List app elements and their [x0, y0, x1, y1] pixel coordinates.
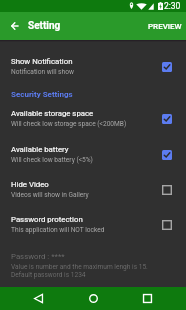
staticText: Available storage space	[11, 109, 94, 118]
staticText: Default password is 1234	[11, 271, 86, 279]
button[interactable]: Recent apps	[136, 287, 158, 310]
staticText: Security Settings	[11, 90, 73, 99]
staticText: Notification will show	[11, 68, 74, 76]
button[interactable]: Home	[82, 287, 104, 310]
staticText: Password : ****	[11, 252, 65, 261]
button[interactable]: Back	[27, 287, 49, 310]
staticText: 2:30	[164, 1, 181, 11]
button[interactable]: Available battery	[0, 142, 186, 164]
button[interactable]: Hide Video	[0, 177, 186, 199]
staticText: Hide Video	[11, 180, 49, 189]
staticText: Available battery	[11, 145, 69, 154]
staticText: Will check low battery (<5%)	[11, 156, 93, 164]
staticText: PREVIEW	[148, 22, 182, 31]
button[interactable]: PREVIEW	[144, 17, 186, 36]
staticText: Show Notification	[11, 57, 73, 66]
staticText: Password protection	[11, 215, 83, 224]
staticText: Videos will show in Gallery	[11, 191, 89, 199]
button[interactable]: Back	[5, 16, 25, 36]
staticText: This application will NOT locked	[11, 226, 105, 234]
button[interactable]: Show Notification	[0, 54, 186, 76]
staticText: Will check low storage space (<200MB)	[11, 120, 127, 128]
staticText: Setting	[28, 20, 61, 32]
staticText: Value is number and the maximum lengh is…	[11, 263, 148, 271]
button[interactable]: Password protection	[0, 212, 186, 234]
button[interactable]: Available storage space	[0, 106, 186, 128]
